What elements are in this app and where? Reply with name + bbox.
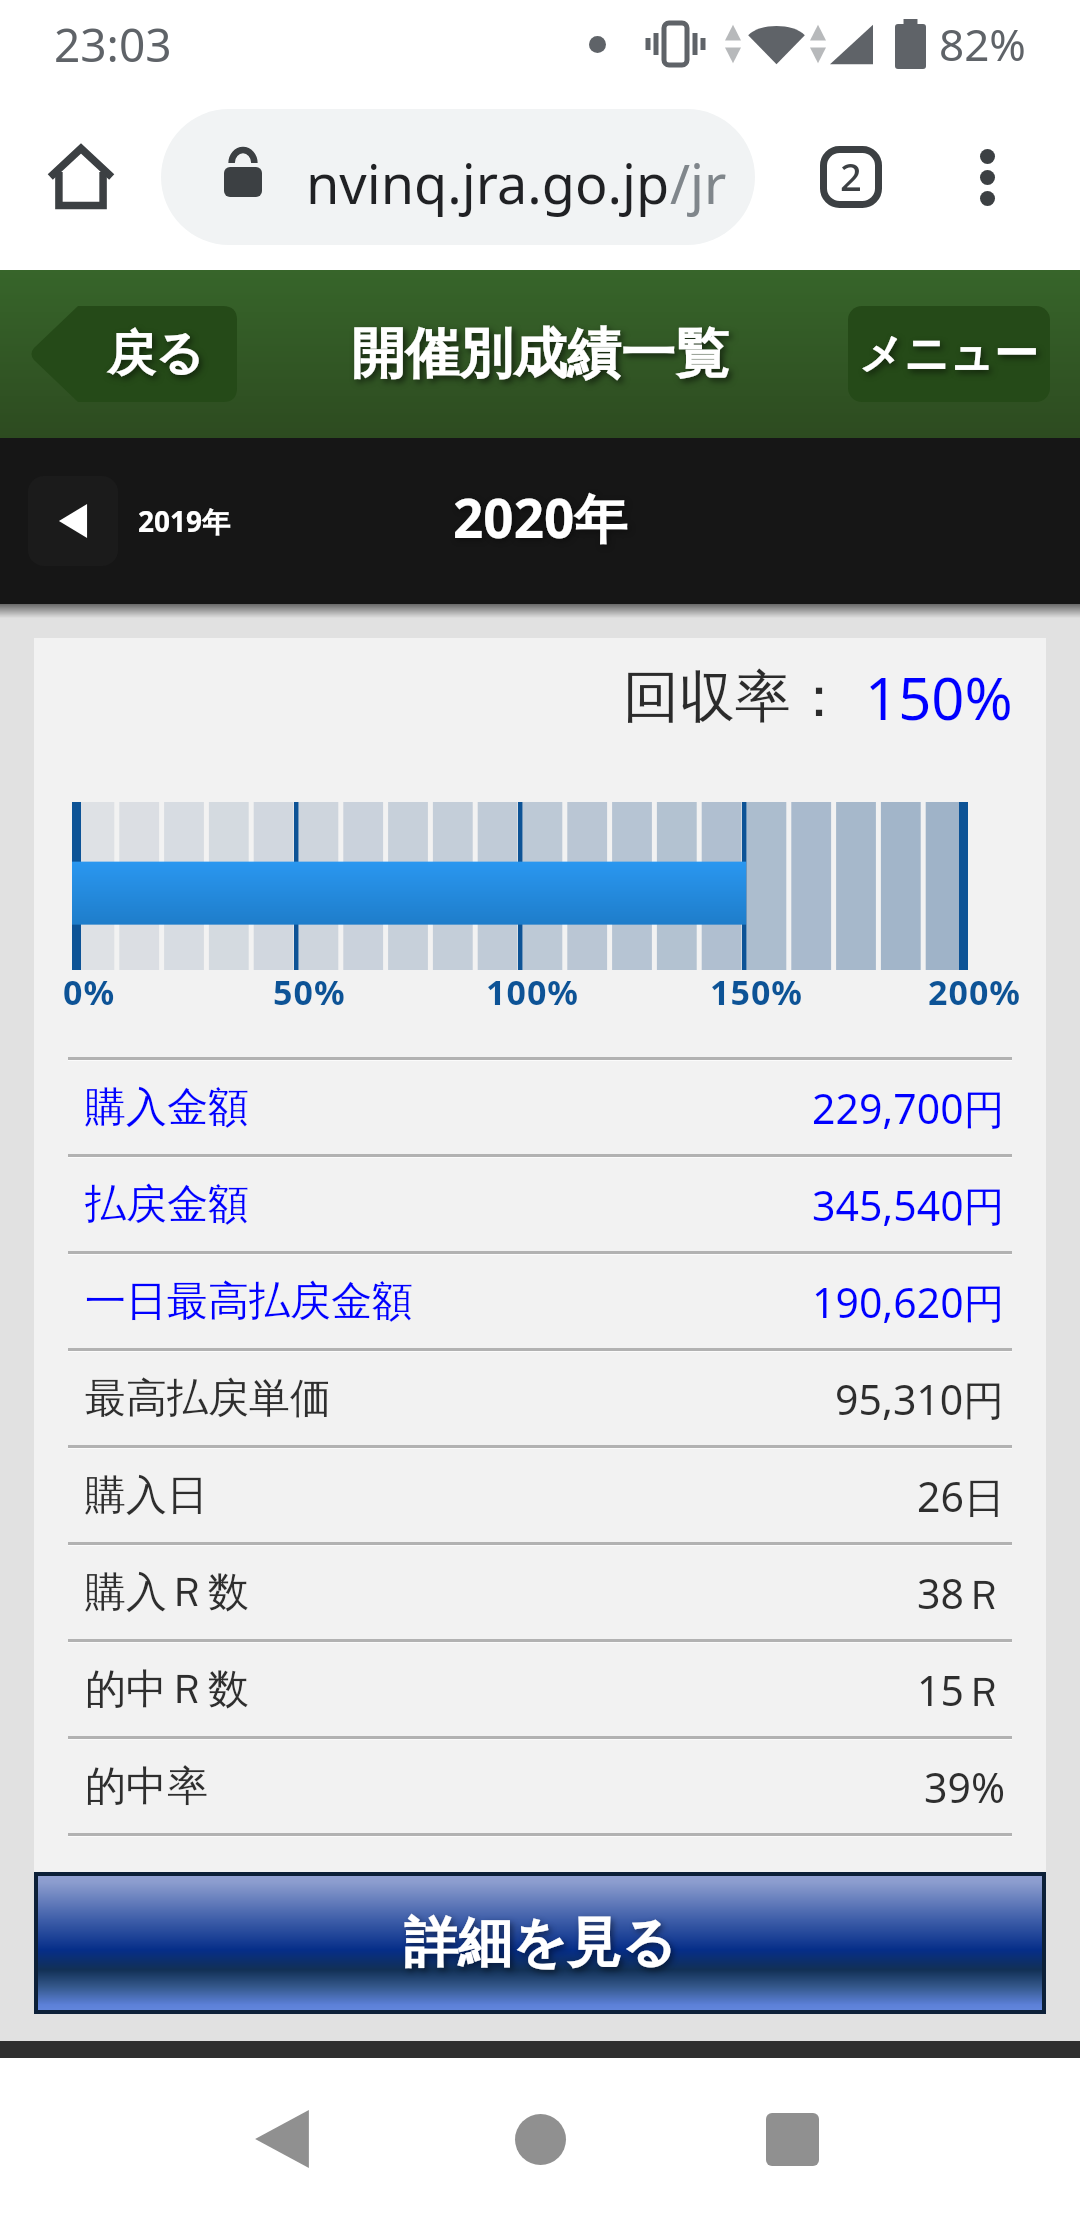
staticText: 詳細を見る	[404, 1909, 677, 1977]
button[interactable]: 的中Ｒ数	[68, 1643, 1012, 1736]
staticText: 購入Ｒ数	[85, 1567, 249, 1619]
staticText: 23:03	[54, 13, 172, 76]
staticText: 回収率：	[623, 662, 847, 733]
button[interactable]: Tabs	[790, 116, 912, 238]
staticText: 50%	[273, 969, 346, 1015]
staticText: 100%	[486, 969, 580, 1015]
button[interactable]: Home	[20, 116, 142, 238]
staticText: 26日	[917, 1468, 1005, 1524]
staticText: 0%	[63, 969, 116, 1015]
staticText: 購入金額	[85, 1082, 249, 1134]
staticText: 15Ｒ	[917, 1662, 1005, 1718]
staticText: 最高払戻単価	[85, 1373, 331, 1425]
button[interactable]: Back	[212, 2069, 352, 2209]
staticText: 229,700円	[812, 1080, 1005, 1136]
staticText: 一日最高払戻金額	[85, 1276, 413, 1328]
button[interactable]: 詳細を見る	[38, 1876, 1042, 2010]
staticText: nvinq.jra.go.jp	[306, 146, 670, 220]
button[interactable]: 最高払戻単価	[68, 1352, 1012, 1445]
staticText: 150%	[865, 658, 1013, 737]
button[interactable]: Recents	[722, 2069, 862, 2209]
button[interactable]: nvinq.jra.go.jp	[161, 109, 755, 245]
staticText: 200%	[928, 969, 1022, 1015]
button[interactable]: 一日最高払戻金額	[68, 1255, 1012, 1348]
staticText: 150%	[710, 969, 804, 1015]
staticText: 払戻金額	[85, 1179, 249, 1231]
button[interactable]: 払戻金額	[68, 1158, 1012, 1251]
staticText: 的中率	[85, 1761, 208, 1813]
staticText: 戻る	[107, 324, 205, 384]
staticText: 190,620円	[812, 1274, 1005, 1330]
staticText: 345,540円	[812, 1177, 1005, 1233]
staticText: 2	[840, 150, 862, 202]
button[interactable]: 2019年	[28, 476, 231, 566]
staticText: 的中Ｒ数	[85, 1664, 249, 1716]
staticText: 開催別成績一覧	[351, 320, 729, 388]
button[interactable]: 購入日	[68, 1449, 1012, 1542]
staticText: 95,310円	[835, 1371, 1005, 1427]
staticText: /jr	[670, 146, 727, 220]
button[interactable]: 購入Ｒ数	[68, 1546, 1012, 1639]
button[interactable]: 購入金額	[68, 1061, 1012, 1154]
button[interactable]: メニュー	[848, 306, 1050, 402]
button[interactable]: Home	[470, 2069, 610, 2209]
staticText: 82%	[939, 14, 1026, 74]
staticText: 39%	[924, 1759, 1005, 1815]
button[interactable]: 戻る	[29, 306, 237, 402]
staticText: 38Ｒ	[917, 1565, 1005, 1621]
staticText: 2020年	[453, 481, 628, 553]
staticText: メニュー	[859, 327, 1039, 382]
button[interactable]: 的中率	[68, 1740, 1012, 1833]
button[interactable]: More options	[928, 118, 1046, 236]
staticText: 購入日	[85, 1470, 208, 1522]
staticText: 2019年	[138, 502, 231, 540]
